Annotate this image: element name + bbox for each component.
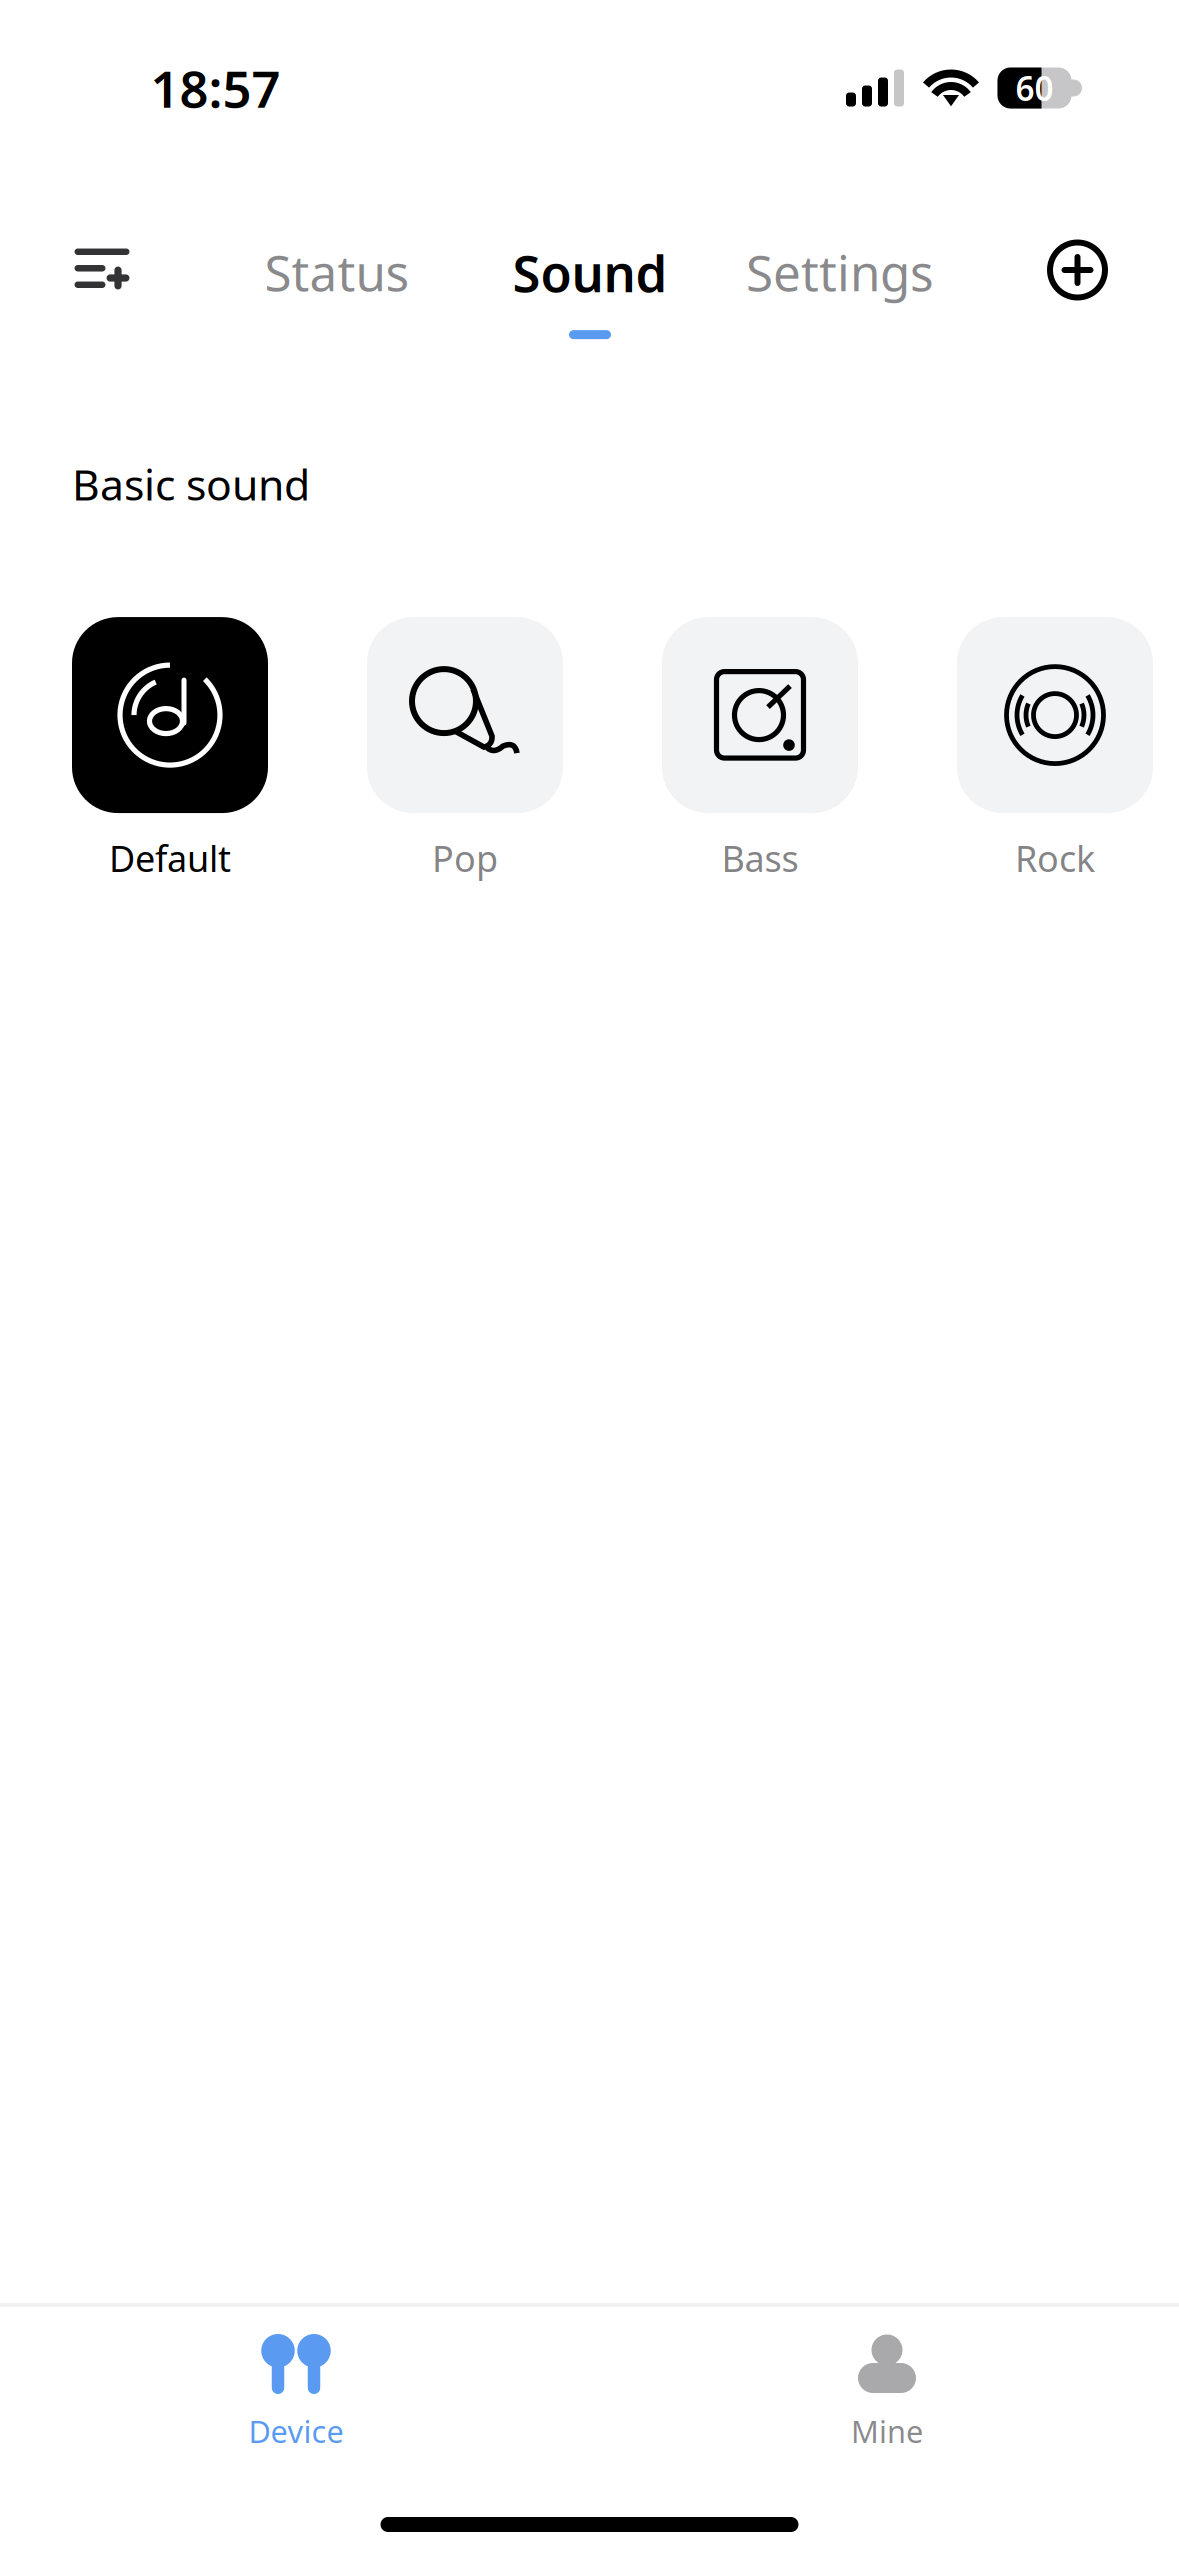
button[interactable]: Rock [957,617,1153,886]
button[interactable]: Status [242,222,432,322]
staticText: Rock [1015,834,1095,882]
staticText: Status [264,239,409,305]
button[interactable]: Mine [737,2306,1037,2466]
staticText: Pop [432,834,498,882]
button[interactable]: Add [1027,220,1127,320]
staticText: Mine [851,2411,923,2451]
staticText: Sound [512,239,667,306]
staticText: Device [248,2411,343,2451]
button[interactable]: Default [72,617,268,886]
staticText: Bass [721,834,798,882]
staticText: Settings [746,239,934,305]
staticText: 18:57 [150,54,280,122]
button[interactable]: Bass [662,617,858,886]
button[interactable]: Device [146,2306,446,2466]
staticText: Basic sound [72,456,310,512]
button[interactable]: Settings [730,222,950,322]
staticText: Default [109,834,231,882]
button[interactable]: Sound [495,239,685,339]
staticText: 60 [1015,66,1053,110]
button[interactable]: Menu [47,219,157,319]
button[interactable]: Pop [367,617,563,886]
